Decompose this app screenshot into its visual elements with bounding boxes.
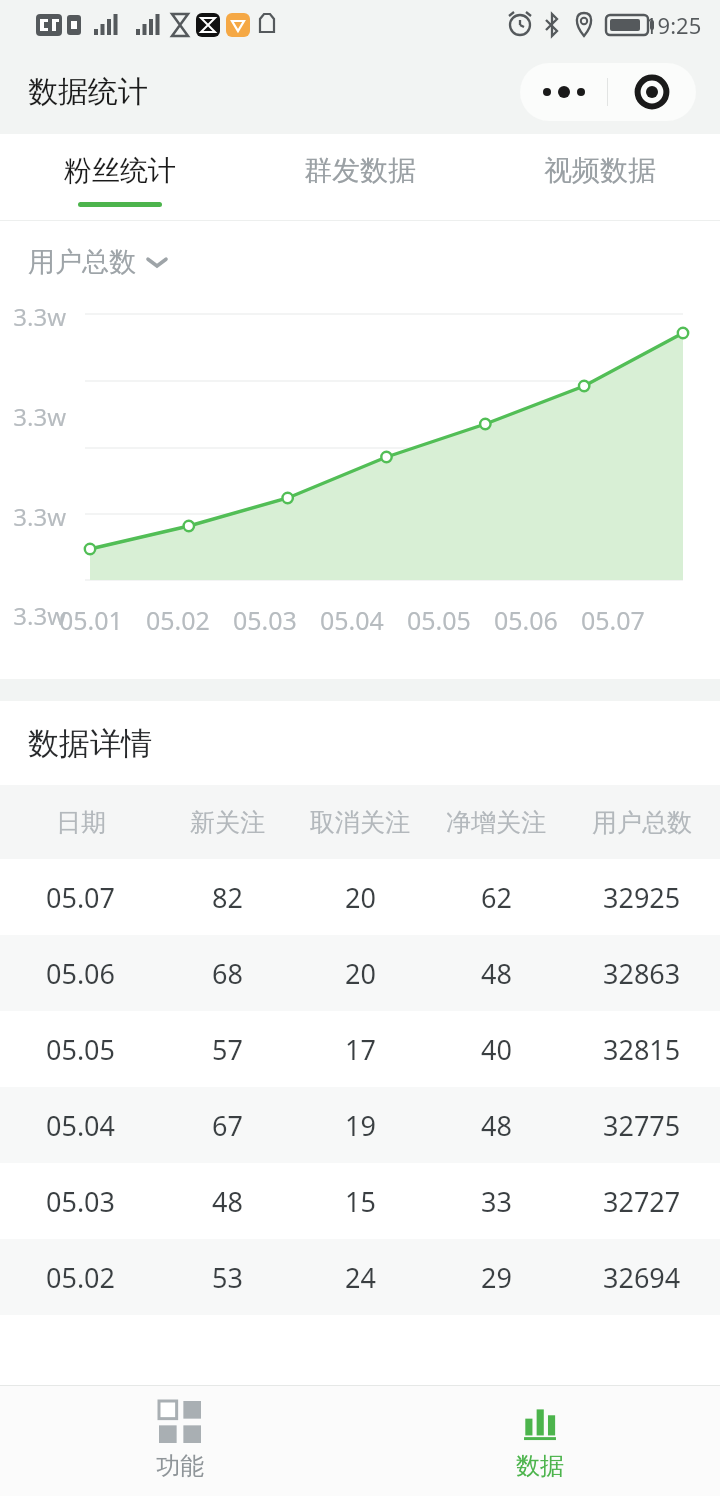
button[interactable]: 05.07 bbox=[0, 859, 720, 935]
staticText: 3.3w bbox=[0, 500, 66, 533]
staticText: 数据 bbox=[516, 1451, 564, 1481]
staticText: 19 bbox=[345, 1107, 376, 1144]
staticText: 05.02 bbox=[46, 1259, 116, 1296]
staticText: 数据详情 bbox=[28, 724, 152, 763]
staticText: 粉丝统计 bbox=[64, 153, 176, 188]
staticText: 15 bbox=[345, 1183, 376, 1220]
staticText: 32727 bbox=[603, 1183, 681, 1220]
staticText: 32775 bbox=[603, 1107, 681, 1144]
staticText: 功能 bbox=[156, 1451, 204, 1481]
staticText: 用户总数 bbox=[592, 807, 692, 838]
button[interactable]: 05.04 bbox=[0, 1087, 720, 1163]
staticText: 3.3w bbox=[0, 400, 66, 433]
staticText: 32863 bbox=[603, 955, 681, 992]
staticText: 17 bbox=[345, 1031, 376, 1068]
staticText: 净增关注 bbox=[446, 807, 546, 838]
staticText: 29 bbox=[481, 1259, 512, 1296]
staticText: 19:25 bbox=[645, 10, 702, 40]
staticText: 05.04 bbox=[320, 603, 384, 637]
staticText: 3.3w bbox=[0, 300, 66, 333]
staticText: 48 bbox=[481, 1107, 512, 1144]
button[interactable]: 05.05 bbox=[0, 1011, 720, 1087]
staticText: 33 bbox=[481, 1183, 512, 1220]
staticText: 48 bbox=[212, 1183, 243, 1220]
staticText: 20 bbox=[345, 879, 376, 916]
staticText: 05.04 bbox=[46, 1107, 116, 1144]
button[interactable]: 群发数据 bbox=[240, 134, 480, 220]
staticText: 05.06 bbox=[46, 955, 116, 992]
button[interactable]: 数据 bbox=[360, 1386, 720, 1496]
staticText: 数据统计 bbox=[28, 73, 148, 111]
staticText: 32815 bbox=[603, 1031, 681, 1068]
button[interactable]: 视频数据 bbox=[480, 134, 720, 220]
staticText: 53 bbox=[212, 1259, 243, 1296]
button[interactable]: 05.03 bbox=[0, 1163, 720, 1239]
staticText: 05.01 bbox=[59, 603, 123, 637]
staticText: 05.07 bbox=[581, 603, 645, 637]
button[interactable]: 粉丝统计 bbox=[0, 134, 240, 220]
staticText: 32694 bbox=[603, 1259, 681, 1296]
staticText: 05.02 bbox=[146, 603, 210, 637]
staticText: 05.05 bbox=[407, 603, 471, 637]
button[interactable]: More and close bbox=[520, 63, 696, 121]
staticText: 32925 bbox=[603, 879, 681, 916]
staticText: 05.03 bbox=[46, 1183, 116, 1220]
button[interactable]: 用户总数 bbox=[28, 245, 168, 279]
button[interactable]: 功能 bbox=[0, 1386, 360, 1496]
staticText: 用户总数 bbox=[28, 245, 136, 279]
staticText: 68 bbox=[212, 955, 243, 992]
staticText: 取消关注 bbox=[310, 807, 410, 838]
staticText: 57 bbox=[212, 1031, 243, 1068]
staticText: 05.07 bbox=[46, 879, 116, 916]
button[interactable]: 05.02 bbox=[0, 1239, 720, 1315]
staticText: 05.03 bbox=[233, 603, 297, 637]
staticText: 新关注 bbox=[190, 807, 265, 838]
staticText: 62 bbox=[481, 879, 512, 916]
staticText: 20 bbox=[345, 955, 376, 992]
staticText: 05.06 bbox=[494, 603, 558, 637]
staticText: 67 bbox=[212, 1107, 243, 1144]
button[interactable]: 05.06 bbox=[0, 935, 720, 1011]
staticText: 群发数据 bbox=[304, 153, 416, 188]
staticText: 48 bbox=[481, 955, 512, 992]
staticText: 3.3w bbox=[0, 599, 66, 632]
staticText: 24 bbox=[345, 1259, 376, 1296]
staticText: 日期 bbox=[56, 807, 106, 838]
staticText: 05.05 bbox=[46, 1031, 116, 1068]
staticText: 视频数据 bbox=[544, 153, 656, 188]
staticText: 40 bbox=[481, 1031, 512, 1068]
staticText: 82 bbox=[212, 879, 243, 916]
